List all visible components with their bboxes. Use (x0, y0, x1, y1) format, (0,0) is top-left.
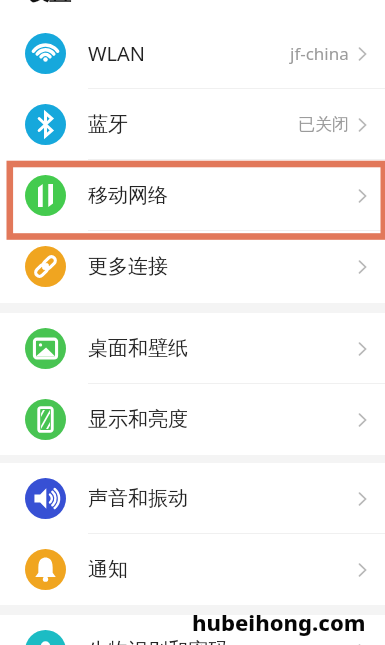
staticText: 已关闭 (298, 114, 349, 135)
button[interactable]: 蓝牙 (0, 89, 385, 160)
staticText: 生物识别和密码 (88, 638, 228, 645)
staticText: jf-china (290, 42, 349, 65)
staticText: 声音和振动 (88, 486, 188, 511)
staticText: 通知 (88, 557, 128, 582)
button[interactable]: 显示和亮度 (0, 384, 385, 455)
button[interactable]: 通知 (0, 534, 385, 605)
staticText: WLAN (88, 40, 146, 67)
button[interactable]: WLAN (0, 18, 385, 89)
staticText: 设置 (27, 0, 71, 7)
staticText: 更多连接 (88, 254, 168, 279)
staticText: 桌面和壁纸 (88, 336, 188, 361)
staticText: 移动网络 (88, 183, 168, 208)
button[interactable]: 桌面和壁纸 (0, 313, 385, 384)
button[interactable]: 生物识别和密码 (0, 615, 385, 645)
staticText: hubeihong.com (192, 607, 366, 637)
button[interactable]: 声音和振动 (0, 463, 385, 534)
button[interactable]: 移动网络 (0, 160, 385, 231)
staticText: 蓝牙 (88, 112, 128, 137)
staticText: 显示和亮度 (88, 407, 188, 432)
button[interactable]: 更多连接 (0, 231, 385, 302)
